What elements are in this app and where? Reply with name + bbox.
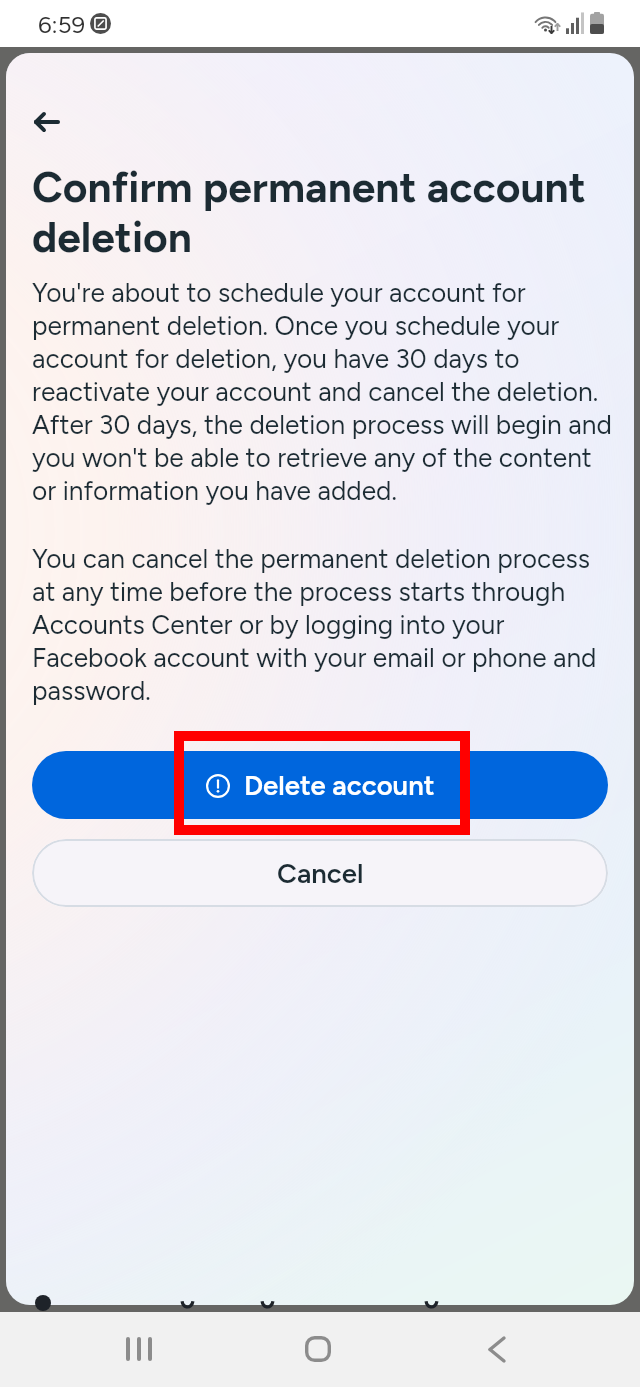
button[interactable]: Recent apps	[109, 1329, 169, 1369]
button[interactable]: Home	[288, 1329, 348, 1369]
staticText: Cancel	[277, 857, 364, 890]
button[interactable]: Back	[18, 93, 76, 151]
staticText: You're about to schedule your account fo…	[32, 276, 617, 507]
staticText: 6:59	[38, 10, 86, 39]
button[interactable]: Delete account	[32, 751, 608, 819]
button[interactable]: Back	[467, 1329, 527, 1369]
staticText: You can cancel the permanent deletion pr…	[32, 542, 617, 707]
staticText: Confirm permanent account deletion	[32, 162, 608, 262]
button[interactable]: Cancel	[32, 839, 608, 907]
staticText: Delete account	[244, 769, 435, 802]
